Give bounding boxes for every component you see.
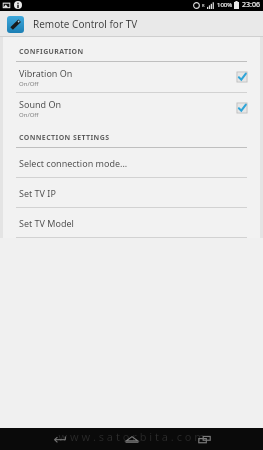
- staticText: Sound On: [19, 98, 61, 110]
- button[interactable]: Toggle setting: [236, 71, 248, 83]
- staticText: w w w . s a t o r b i t a . c o m: [0, 429, 263, 444]
- button[interactable]: Recent apps: [191, 430, 217, 448]
- button[interactable]: Home: [119, 430, 145, 448]
- button[interactable]: Select connection mode...: [3, 148, 260, 177]
- button[interactable]: Toggle setting: [236, 102, 248, 114]
- staticText: Select connection mode...: [19, 157, 128, 169]
- staticText: On/Off: [19, 80, 39, 88]
- staticText: 100%: [217, 1, 233, 9]
- button[interactable]: Set TV Model: [3, 208, 260, 237]
- button[interactable]: Vibration On: [3, 62, 260, 92]
- button[interactable]: Sound On: [3, 93, 260, 123]
- staticText: CONNECTION SETTINGS: [19, 133, 110, 143]
- button[interactable]: Back: [46, 430, 72, 448]
- staticText: CONFIGURATION: [19, 47, 84, 57]
- staticText: Set TV IP: [19, 187, 56, 199]
- staticText: Vibration On: [19, 67, 73, 79]
- staticText: Remote Control for TV: [33, 17, 138, 31]
- button[interactable]: Set TV IP: [3, 178, 260, 207]
- staticText: 23:06: [242, 0, 260, 10]
- staticText: Set TV Model: [19, 217, 74, 229]
- staticText: On/Off: [19, 111, 39, 119]
- staticText: R: [202, 3, 205, 8]
